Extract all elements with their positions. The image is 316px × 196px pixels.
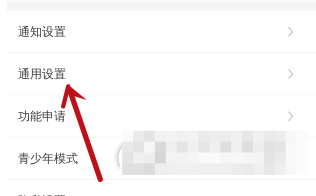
button[interactable]: 通用设置: [0, 53, 316, 95]
staticText: 通知设置: [18, 24, 66, 39]
button[interactable]: 隐私设置: [0, 180, 316, 196]
button[interactable]: 青少年模式: [0, 137, 316, 180]
staticText: 隐私设置: [18, 193, 66, 196]
staticText: 青少年模式: [18, 151, 78, 166]
staticText: 通用设置: [18, 67, 66, 81]
staticText: 功能申请: [18, 109, 66, 124]
button[interactable]: 功能申请: [0, 95, 316, 137]
button[interactable]: 通知设置: [0, 10, 316, 53]
